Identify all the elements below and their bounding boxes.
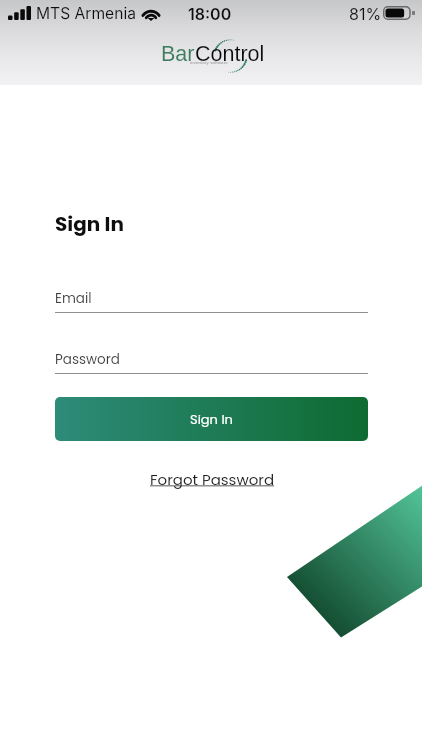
staticText: 81% — [349, 4, 382, 23]
other: Battery 81 percent — [383, 6, 415, 20]
button[interactable]: Password — [55, 350, 368, 375]
staticText: Password — [55, 350, 120, 369]
button[interactable]: Forgot Password — [150, 469, 275, 490]
button[interactable]: Bar — [161, 41, 291, 81]
staticText: Control — [195, 42, 265, 66]
staticText: Bar — [161, 42, 195, 66]
staticText: Sign In — [55, 210, 124, 238]
staticText: Email — [55, 289, 92, 308]
button[interactable]: Sign In — [55, 397, 368, 441]
staticText: MTS Armenia — [36, 4, 136, 23]
button[interactable]: Email — [55, 289, 368, 314]
other: Wi-Fi — [141, 6, 161, 21]
staticText: inventory software — [190, 60, 228, 65]
staticText: Sign In — [190, 410, 233, 428]
staticText: 18:00 — [188, 4, 232, 23]
other: Cellular signal — [8, 6, 31, 20]
